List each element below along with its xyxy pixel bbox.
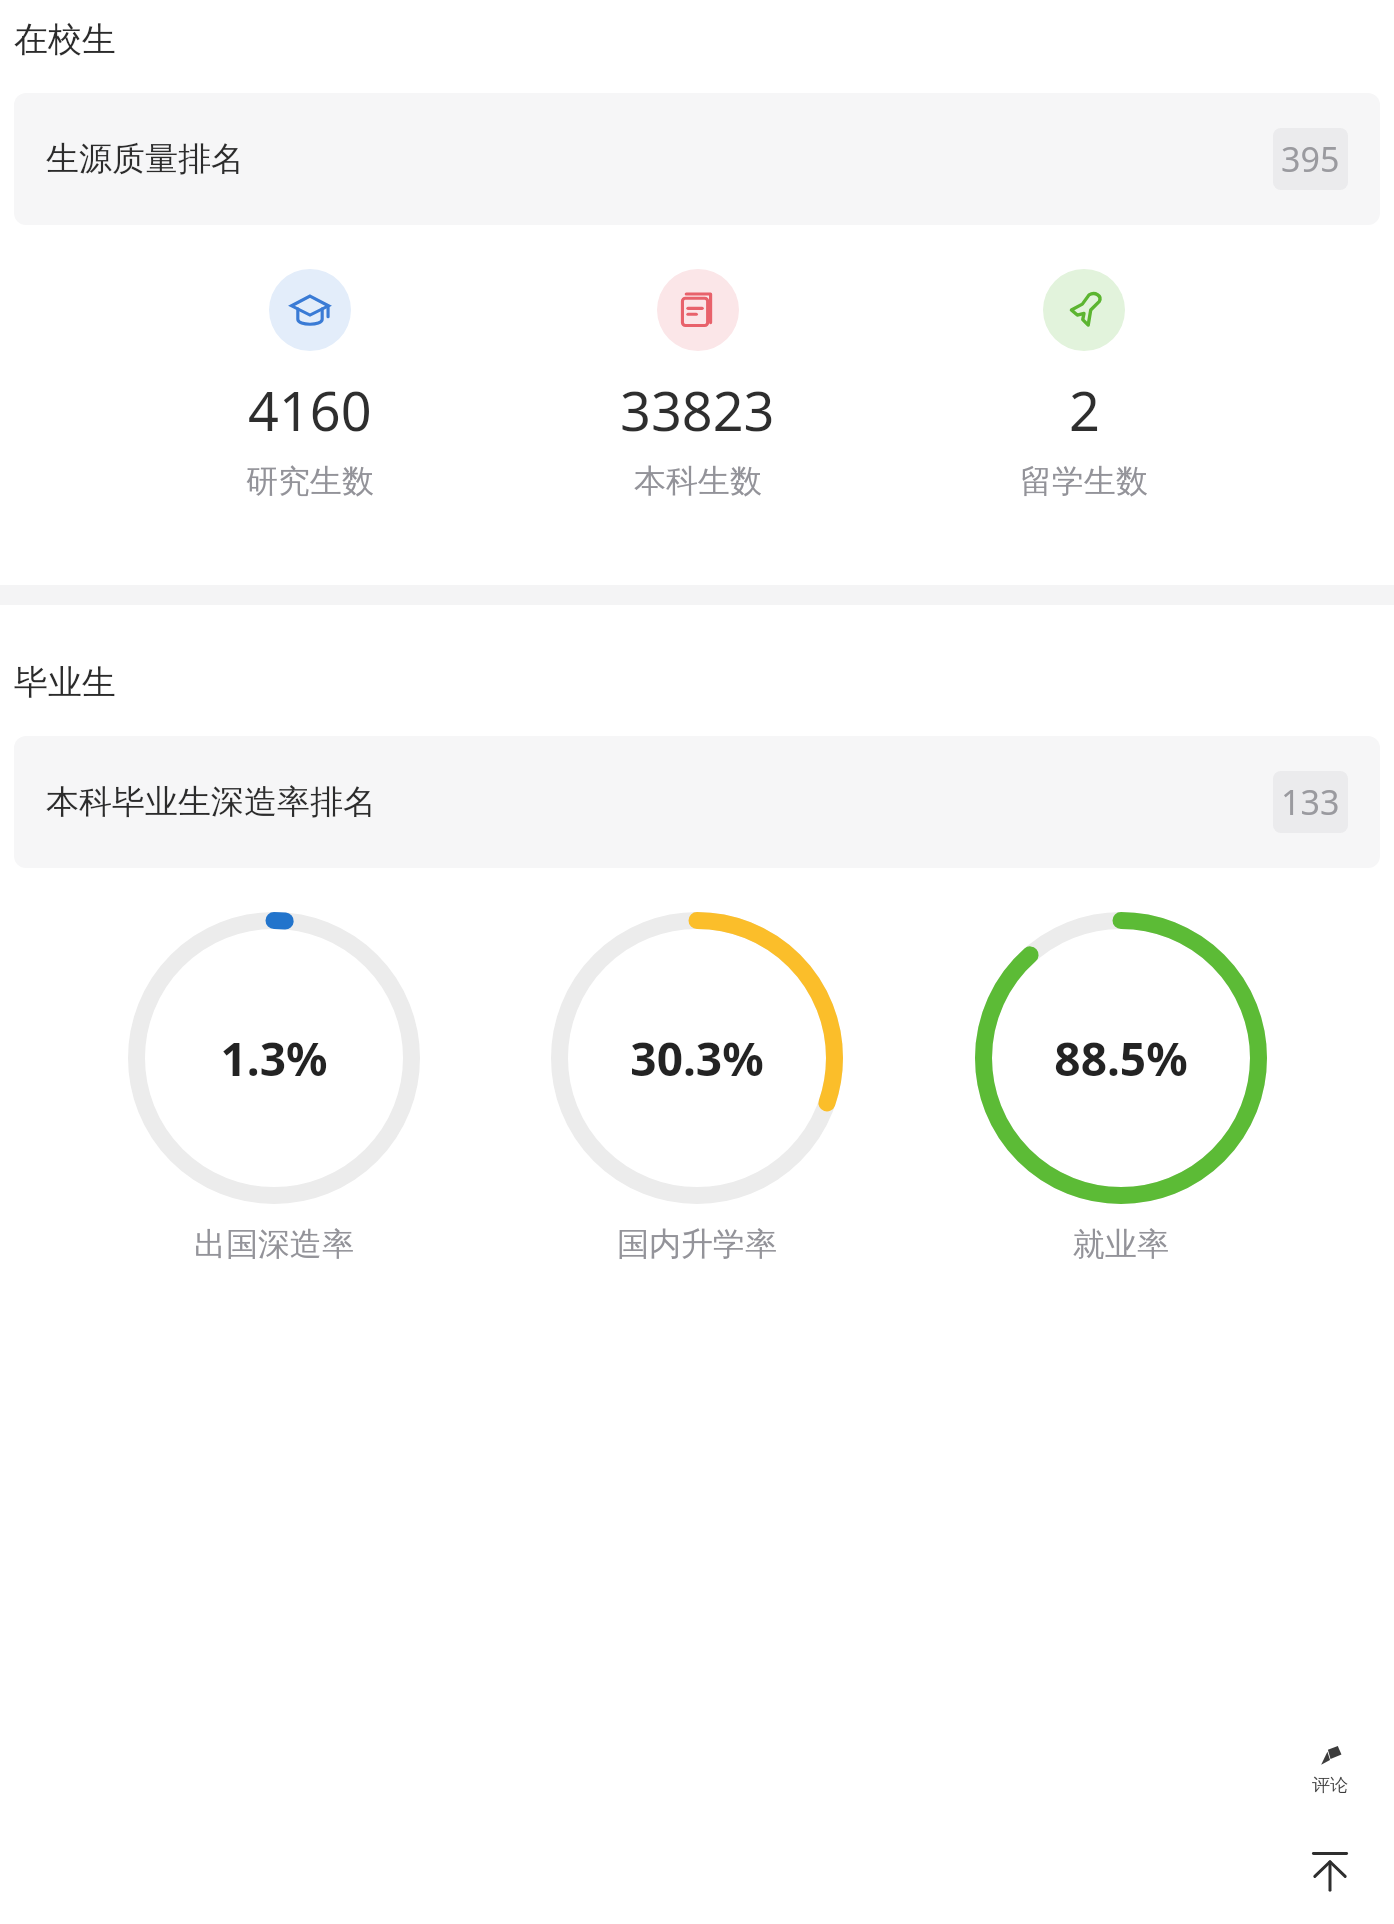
staticText: 本科毕业生深造率排名: [46, 781, 376, 823]
staticText: 就业率: [1073, 1224, 1169, 1264]
staticText: 评论: [1312, 1774, 1348, 1797]
staticText: 133: [1281, 779, 1340, 825]
staticText: 研究生数: [246, 461, 374, 501]
staticText: 2: [1069, 373, 1100, 447]
staticText: 留学生数: [1020, 461, 1148, 501]
button[interactable]: 评论: [1288, 1728, 1372, 1812]
staticText: 出国深造率: [194, 1224, 354, 1264]
staticText: 国内升学率: [617, 1224, 777, 1264]
staticText: 88.5%: [1054, 1027, 1188, 1090]
staticText: 本科生数: [634, 461, 762, 501]
staticText: 4160: [248, 373, 372, 447]
staticText: 生源质量排名: [46, 138, 244, 180]
staticText: 33823: [620, 373, 775, 447]
staticText: 毕业生: [14, 661, 116, 704]
button[interactable]: 本科毕业生深造率排名: [14, 736, 1380, 868]
staticText: 在校生: [14, 18, 116, 61]
staticText: 30.3%: [630, 1027, 764, 1090]
button[interactable]: 生源质量排名: [14, 93, 1380, 225]
staticText: 1.3%: [220, 1027, 328, 1090]
button[interactable]: 回到顶部: [1288, 1828, 1372, 1912]
staticText: 395: [1281, 136, 1340, 182]
